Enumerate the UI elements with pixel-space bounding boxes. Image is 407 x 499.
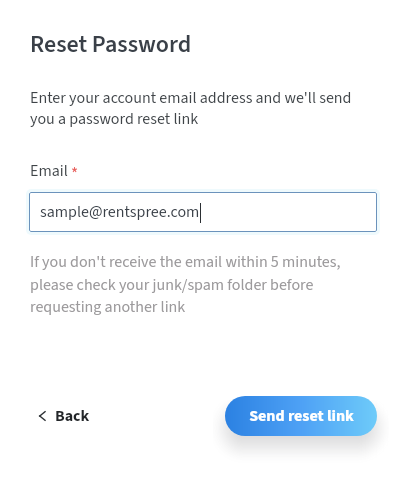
staticText: Reset Password	[30, 27, 192, 61]
staticText: Email	[30, 160, 68, 183]
staticText: Send reset link	[249, 405, 354, 428]
button[interactable]: sample@rentspree.com	[29, 192, 377, 232]
staticText: sample@rentspree.com	[40, 201, 200, 224]
staticText: *	[71, 163, 79, 187]
staticText: Enter your account email address and we'…	[30, 87, 355, 131]
button[interactable]: Back	[29, 402, 98, 430]
other: Back	[39, 411, 45, 421]
staticText: If you don't receive the email within 5 …	[30, 251, 345, 318]
button[interactable]: Send reset link	[225, 396, 377, 436]
staticText: Back	[55, 405, 90, 428]
